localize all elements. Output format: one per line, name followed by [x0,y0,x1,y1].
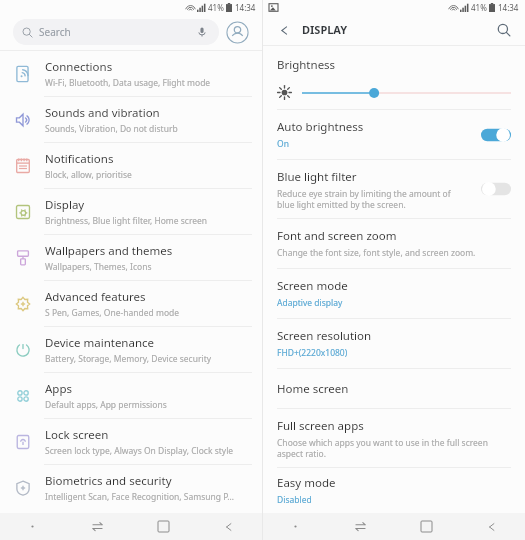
staticText: 41% [208,2,224,13]
staticText: Screen mode [277,278,348,294]
staticText: Brightness [277,57,336,73]
button[interactable]: Switch apps [328,513,393,540]
button[interactable]: Menu [263,513,328,540]
button[interactable]: Auto brightness [277,110,525,159]
button[interactable]: Screen resolution [277,319,525,368]
staticText: Connections [45,59,113,75]
staticText: Full screen apps [277,418,364,434]
button[interactable]: Blue light filter [277,160,525,218]
button[interactable]: Back [273,19,295,41]
staticText: Screen lock type, Always On Display, Clo… [45,445,234,457]
staticText: On [277,138,289,150]
button[interactable]: Font and screen zoom [277,219,525,268]
button[interactable]: Search [493,19,515,41]
staticText: Wallpapers and themes [45,243,173,259]
button[interactable]: Home [393,513,459,540]
button[interactable]: Advanced features [0,281,262,326]
staticText: Font and screen zoom [277,228,397,244]
button[interactable]: Sounds and vibration [0,97,262,142]
button[interactable]: Brightness slider [302,86,511,100]
button[interactable]: Back [196,513,262,540]
staticText: S Pen, Games, One-handed mode [45,307,180,319]
staticText: Screen resolution [277,328,372,344]
button[interactable]: Biometrics and security [0,465,262,510]
staticText: Auto brightness [277,119,364,135]
staticText: Blue light filter [277,169,357,185]
staticText: 41% [471,2,487,13]
staticText: Reduce eye strain by limiting the amount… [277,188,451,210]
staticText: Device maintenance [45,335,155,351]
staticText: Biometrics and security [45,473,172,489]
staticText: Sounds, Vibration, Do not disturb [45,123,178,135]
button[interactable]: Home [130,513,196,540]
button[interactable]: Notifications [0,143,262,188]
button[interactable]: Home screen [277,369,525,408]
button[interactable]: Lock screen [0,419,262,464]
staticText: Block, allow, prioritise [45,169,132,181]
button[interactable]: Blue light filter [481,181,511,197]
staticText: Lock screen [45,427,109,443]
staticText: Disabled [277,494,312,506]
button[interactable]: Menu [0,513,65,540]
button[interactable]: Switch apps [65,513,130,540]
staticText: Sounds and vibration [45,105,160,121]
button[interactable]: Account [226,21,249,44]
button[interactable]: Apps [0,373,262,418]
staticText: FHD+(2220x1080) [277,347,348,359]
staticText: Intelligent Scan, Face Recognition, Sams… [45,491,234,503]
staticText: Display [45,197,85,213]
staticText: DISPLAY [302,22,348,37]
staticText: Choose which apps you want to use in the… [277,437,488,459]
staticText: Advanced features [45,289,146,305]
button[interactable]: Display [0,189,262,234]
staticText: Wallpapers, Themes, Icons [45,261,152,273]
staticText: Notifications [45,151,114,167]
staticText: Apps [45,381,73,397]
staticText: Wi-Fi, Bluetooth, Data usage, Flight mod… [45,77,211,89]
button[interactable]: Full screen apps [277,409,525,467]
button[interactable]: Voice search [194,24,210,40]
staticText: Brightness, Blue light filter, Home scre… [45,215,208,227]
staticText: Default apps, App permissions [45,399,167,411]
button[interactable]: Connections [0,51,262,96]
staticText: Adaptive display [277,297,343,309]
button[interactable]: Auto brightness [481,127,511,143]
button[interactable]: Back [459,513,525,540]
button[interactable]: Screen mode [277,269,525,318]
button[interactable]: Search [13,19,219,45]
button[interactable]: Wallpapers and themes [0,235,262,280]
staticText: Easy mode [277,475,336,491]
button[interactable]: Easy mode [277,468,525,513]
staticText: Change the font size, font style, and sc… [277,247,476,259]
staticText: Home screen [277,381,349,397]
staticText: Battery, Storage, Memory, Device securit… [45,353,212,365]
staticText: Search [39,25,71,39]
button[interactable]: Device maintenance [0,327,262,372]
staticText: 14:34 [235,2,256,13]
staticText: 14:34 [498,2,519,13]
